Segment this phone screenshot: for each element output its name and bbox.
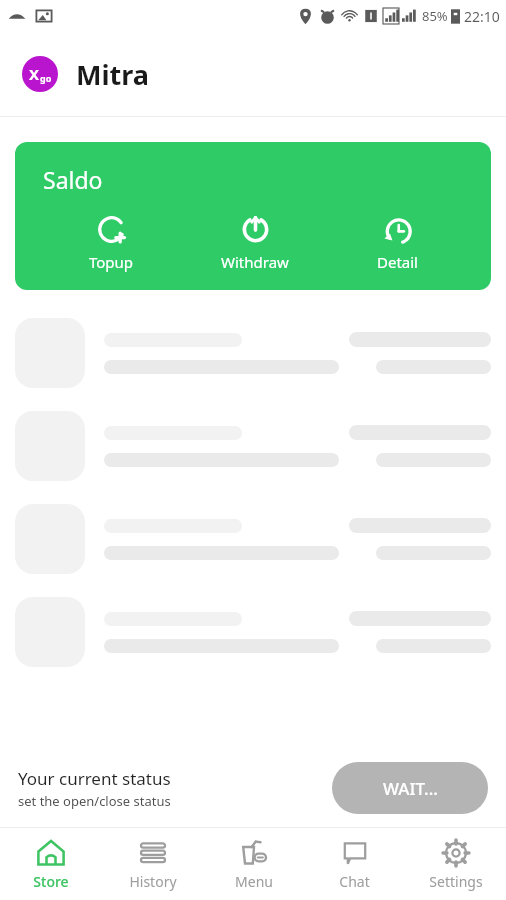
staticText: WAIT... <box>383 777 438 800</box>
other: Withdraw <box>240 214 271 245</box>
staticText: Your current status <box>18 767 171 790</box>
staticText: Settings <box>429 872 483 891</box>
button[interactable]: WAIT... <box>332 762 488 814</box>
staticText: Topup <box>89 252 134 272</box>
staticText: Menu <box>235 872 273 891</box>
staticText: Withdraw <box>221 252 289 272</box>
button[interactable]: Settings <box>405 828 506 900</box>
button[interactable]: Store <box>0 828 102 900</box>
other: Topup <box>96 214 127 245</box>
staticText: go <box>40 72 52 84</box>
staticText: Saldo <box>43 164 103 195</box>
other: Detail <box>382 214 413 245</box>
button[interactable]: Menu <box>203 828 304 900</box>
staticText: 85% <box>422 7 448 25</box>
staticText: set the open/close status <box>18 792 171 810</box>
staticText: Store <box>33 872 69 891</box>
staticText: 22:10 <box>464 7 500 26</box>
staticText: Mitra <box>76 56 149 93</box>
button[interactable]: History <box>102 828 203 900</box>
button[interactable]: Chat <box>304 828 405 900</box>
staticText: Detail <box>377 252 418 272</box>
staticText: History <box>129 872 177 891</box>
staticText: Chat <box>339 872 370 891</box>
button[interactable]: Detail <box>363 210 432 276</box>
button[interactable]: Topup <box>75 210 148 276</box>
button[interactable]: Withdraw <box>207 210 303 276</box>
staticText: X <box>29 64 40 84</box>
